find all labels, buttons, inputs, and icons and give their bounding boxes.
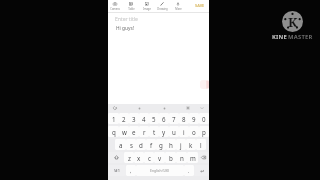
button[interactable]: 7 xyxy=(169,113,179,124)
button[interactable]: w xyxy=(119,126,129,137)
button[interactable]: j xyxy=(176,139,186,150)
staticText: n xyxy=(180,154,184,162)
button[interactable]: y xyxy=(159,126,169,137)
staticText: 4 xyxy=(142,115,146,123)
staticText: K xyxy=(288,13,298,31)
button[interactable]: z xyxy=(124,152,134,163)
staticText: d xyxy=(139,141,143,149)
button[interactable]: t xyxy=(149,126,159,137)
staticText: 7 xyxy=(172,115,176,123)
staticText: !#1 xyxy=(114,168,120,173)
staticText: z xyxy=(128,154,131,162)
staticText: o xyxy=(192,128,196,136)
staticText: g xyxy=(159,141,163,149)
staticText: Hi guys! xyxy=(116,25,134,32)
button[interactable]: g xyxy=(156,139,166,150)
button[interactable]: s xyxy=(126,139,136,150)
staticText: 3 xyxy=(132,115,136,123)
button[interactable]: Camera xyxy=(108,0,123,11)
staticText: y xyxy=(162,128,166,136)
button[interactable]: Shift xyxy=(108,152,124,163)
button[interactable]: 3 xyxy=(129,113,139,124)
staticText: x xyxy=(137,154,141,162)
staticText: Table xyxy=(128,7,135,11)
button[interactable]: o xyxy=(189,126,199,137)
button[interactable]: p xyxy=(199,126,209,137)
staticText: SAVE xyxy=(195,3,205,8)
staticText: c xyxy=(148,154,151,162)
button[interactable]: , xyxy=(126,165,136,176)
button[interactable]: Stickers xyxy=(135,104,143,112)
staticText: i xyxy=(183,128,185,136)
button[interactable]: Expand suggestions xyxy=(198,104,206,112)
button[interactable]: 5 xyxy=(149,113,159,124)
button[interactable]: Space xyxy=(136,165,184,176)
button[interactable]: h xyxy=(166,139,176,150)
staticText: More xyxy=(175,7,182,11)
staticText: t xyxy=(153,128,156,136)
staticText: q xyxy=(112,128,116,136)
button[interactable]: v xyxy=(154,152,165,163)
button[interactable]: k xyxy=(186,139,196,150)
staticText: s xyxy=(130,141,133,149)
button[interactable]: 6 xyxy=(159,113,169,124)
button[interactable]: l xyxy=(196,139,206,150)
staticText: 6 xyxy=(162,115,166,123)
staticText: 1 xyxy=(112,115,116,123)
button[interactable]: n xyxy=(176,152,187,163)
button[interactable]: q xyxy=(108,126,119,137)
button[interactable]: Image xyxy=(139,0,155,11)
staticText: , xyxy=(130,167,132,174)
button[interactable]: b xyxy=(165,152,176,163)
button[interactable]: Settings xyxy=(184,104,192,112)
button[interactable]: x xyxy=(134,152,144,163)
staticText: KINE xyxy=(272,33,288,41)
staticText: Image xyxy=(143,7,151,11)
staticText: Camera xyxy=(110,7,120,11)
button[interactable]: m xyxy=(187,152,198,163)
button[interactable]: 2 xyxy=(119,113,129,124)
staticText: 2 xyxy=(122,115,126,123)
staticText: k xyxy=(189,141,193,149)
button[interactable]: 9 xyxy=(189,113,199,124)
button[interactable]: Backspace xyxy=(198,152,209,163)
staticText: . xyxy=(188,167,190,174)
button[interactable]: 1 xyxy=(108,113,119,124)
button[interactable]: Table xyxy=(123,0,139,11)
button[interactable]: r xyxy=(139,126,149,137)
staticText: e xyxy=(132,128,136,136)
button[interactable]: u xyxy=(169,126,179,137)
button[interactable]: c xyxy=(144,152,154,163)
staticText: v xyxy=(158,154,162,162)
button[interactable]: 0 xyxy=(199,113,209,124)
staticText: m xyxy=(190,154,196,162)
button[interactable]: SAVE xyxy=(194,2,206,9)
button[interactable]: More xyxy=(170,0,186,11)
staticText: MASTER xyxy=(288,33,313,41)
staticText: 9 xyxy=(192,115,196,123)
staticText: u xyxy=(172,128,176,136)
button[interactable]: 4 xyxy=(139,113,149,124)
staticText: p xyxy=(202,128,206,136)
button[interactable]: Enter xyxy=(194,165,209,176)
staticText: English (UK) xyxy=(150,168,170,173)
button[interactable]: !#1 xyxy=(108,165,126,176)
staticText: l xyxy=(200,141,202,149)
staticText: w xyxy=(122,128,127,136)
button[interactable]: e xyxy=(129,126,139,137)
button[interactable]: f xyxy=(146,139,156,150)
staticText: b xyxy=(169,154,173,162)
button[interactable]: Drawing xyxy=(154,0,170,11)
button[interactable]: GIF xyxy=(160,104,168,112)
staticText: 5 xyxy=(152,115,156,123)
button[interactable]: Google search xyxy=(110,104,119,112)
button[interactable]: i xyxy=(179,126,189,137)
button[interactable]: d xyxy=(136,139,146,150)
button[interactable]: . xyxy=(184,165,194,176)
staticText: a xyxy=(119,141,123,149)
button[interactable]: 8 xyxy=(179,113,189,124)
staticText: 0 xyxy=(202,115,206,123)
staticText: f xyxy=(150,141,153,149)
button[interactable]: a xyxy=(115,139,126,150)
staticText: h xyxy=(169,141,173,149)
